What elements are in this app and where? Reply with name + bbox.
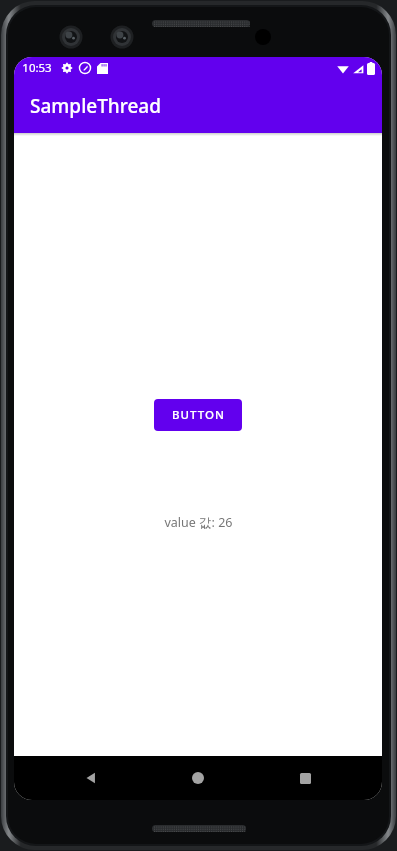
staticText: SampleThread: [30, 93, 161, 119]
button[interactable]: Home: [168, 756, 228, 800]
button[interactable]: Recent apps: [275, 756, 335, 800]
staticText: 10:53: [22, 60, 52, 76]
staticText: value 값: 26: [164, 514, 233, 531]
staticText: BUTTON: [172, 407, 225, 423]
button[interactable]: BUTTON: [154, 399, 242, 431]
button[interactable]: Back: [61, 756, 121, 800]
